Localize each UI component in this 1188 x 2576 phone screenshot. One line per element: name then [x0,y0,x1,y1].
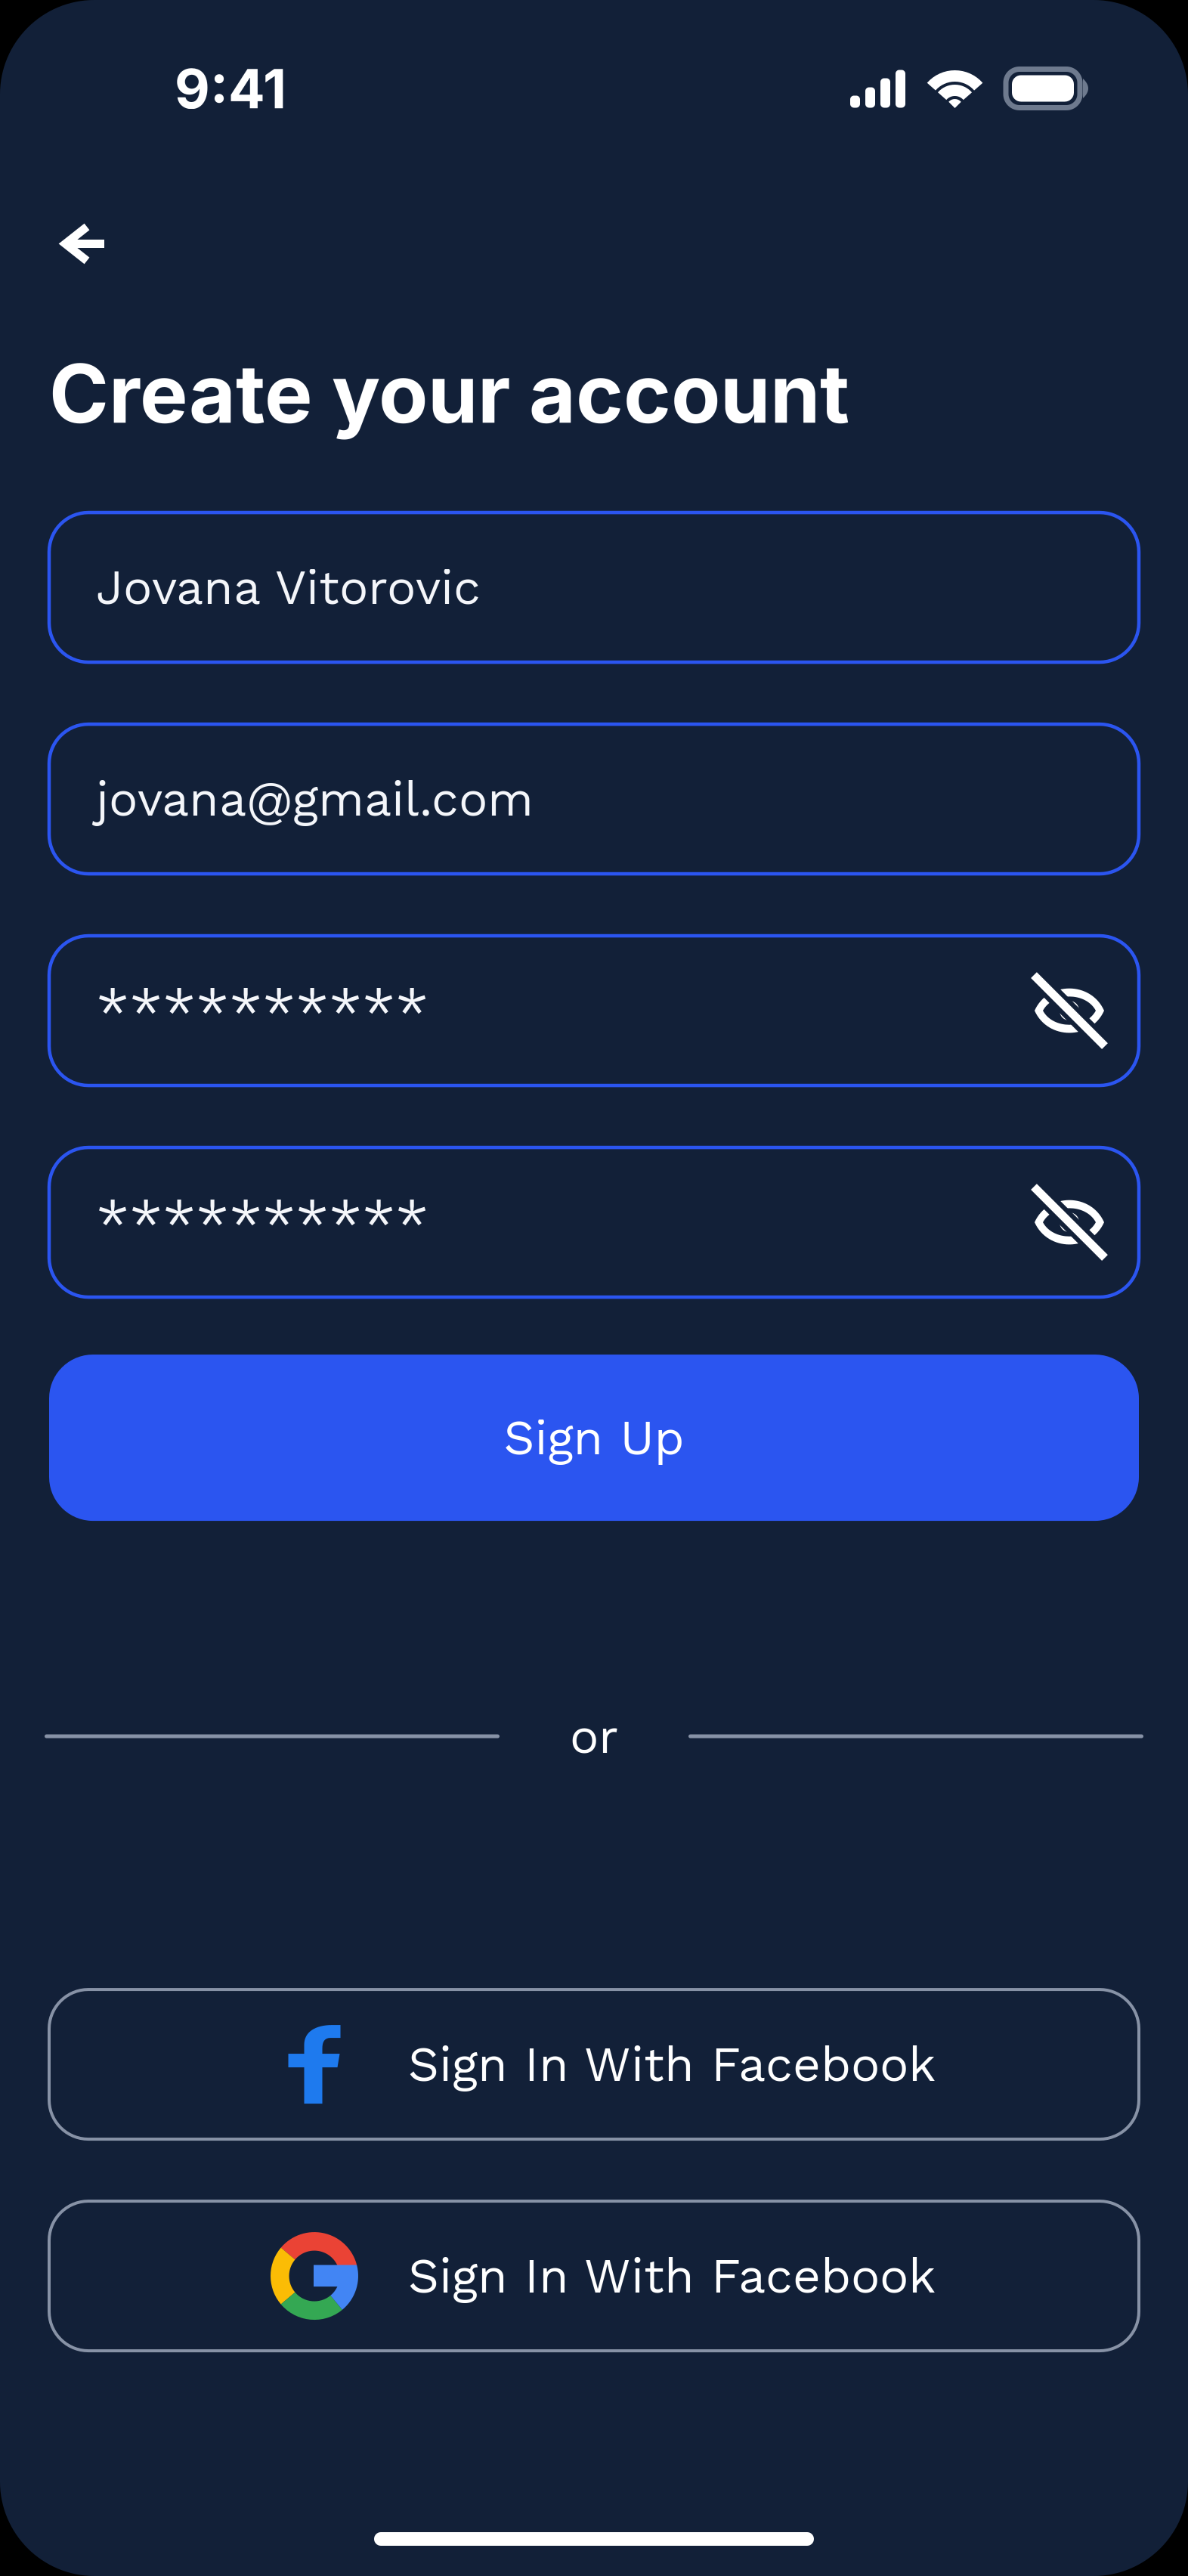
button[interactable]: Show password [1033,1186,1106,1259]
button[interactable]: Sign In With Facebook [49,1990,1139,2139]
button[interactable]: Sign In With Facebook [49,2201,1139,2351]
staticText: Sign Up [504,1409,684,1466]
staticText: ********** [96,976,428,1045]
staticText: Sign In With Facebook [408,2248,936,2304]
staticText: ********** [96,1188,428,1257]
staticText: or [570,1708,618,1765]
button[interactable]: Back [41,203,128,285]
staticText: Jovana Vitorovic [96,559,481,616]
staticText: 9:41 [175,55,286,121]
button[interactable]: Sign Up [49,1355,1139,1521]
button[interactable]: Show password [1033,974,1106,1047]
staticText: jovana@gmail.com [96,771,534,827]
staticText: Create your account [49,345,849,442]
staticText: Sign In With Facebook [408,2036,936,2093]
